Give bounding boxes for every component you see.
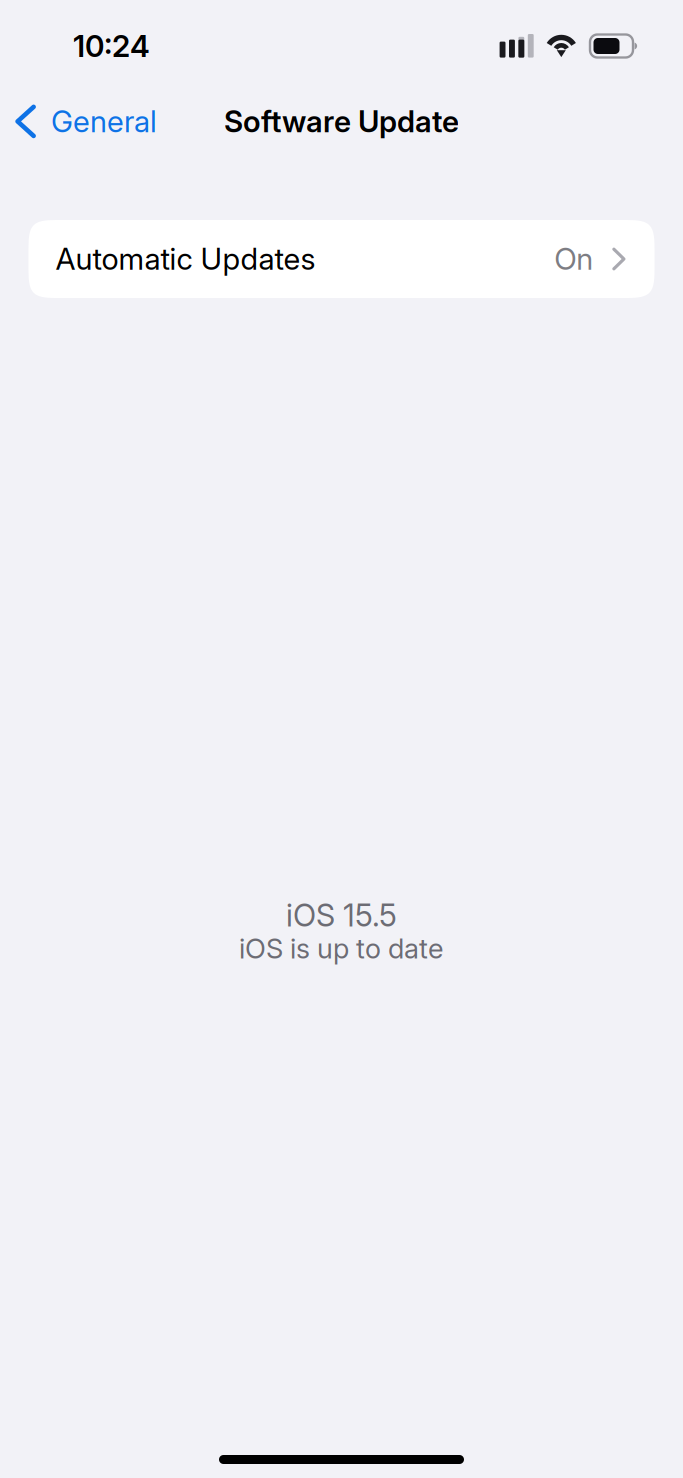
button[interactable]: Automatic Updates (28, 220, 654, 298)
button[interactable]: Back to General (0, 92, 171, 151)
staticText: iOS 15.5 (286, 897, 397, 934)
staticText: General (51, 103, 157, 139)
staticText: Software Update (224, 103, 459, 139)
staticText: Automatic Updates (55, 241, 315, 277)
staticText: iOS is up to date (239, 932, 444, 965)
staticText: 10:24 (73, 28, 150, 64)
staticText: On (554, 241, 593, 277)
